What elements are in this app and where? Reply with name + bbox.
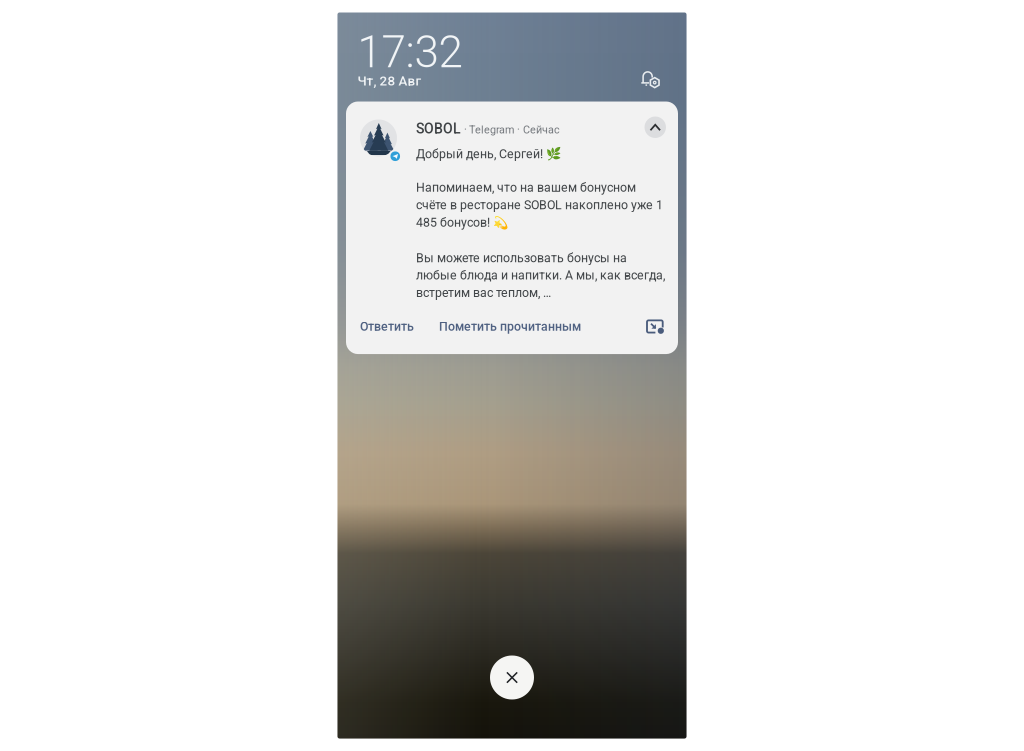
staticText: SOBOL bbox=[416, 120, 461, 137]
staticText: 17:32 bbox=[357, 26, 462, 78]
staticText: Вы можете использовать бонусы на любые б… bbox=[416, 251, 665, 300]
button[interactable]: Пометить прочитанным bbox=[439, 319, 581, 334]
staticText: Ответить bbox=[360, 319, 414, 334]
button[interactable]: Dismiss bbox=[490, 655, 534, 699]
staticText: Напоминаем, что на вашем бонусном счёте … bbox=[416, 180, 663, 230]
staticText: Добрый день, Сергей! 🌿 bbox=[416, 147, 561, 161]
button[interactable]: Notification settings bbox=[635, 62, 666, 93]
staticText: Чт, 28 Авг bbox=[357, 73, 421, 89]
staticText: · Telegram · Сейчас bbox=[461, 123, 560, 136]
button[interactable]: Collapse notification bbox=[644, 120, 664, 138]
staticText: Пометить прочитанным bbox=[439, 319, 581, 334]
button[interactable]: Open in bubble bbox=[646, 319, 664, 334]
button[interactable]: Ответить bbox=[360, 319, 414, 334]
